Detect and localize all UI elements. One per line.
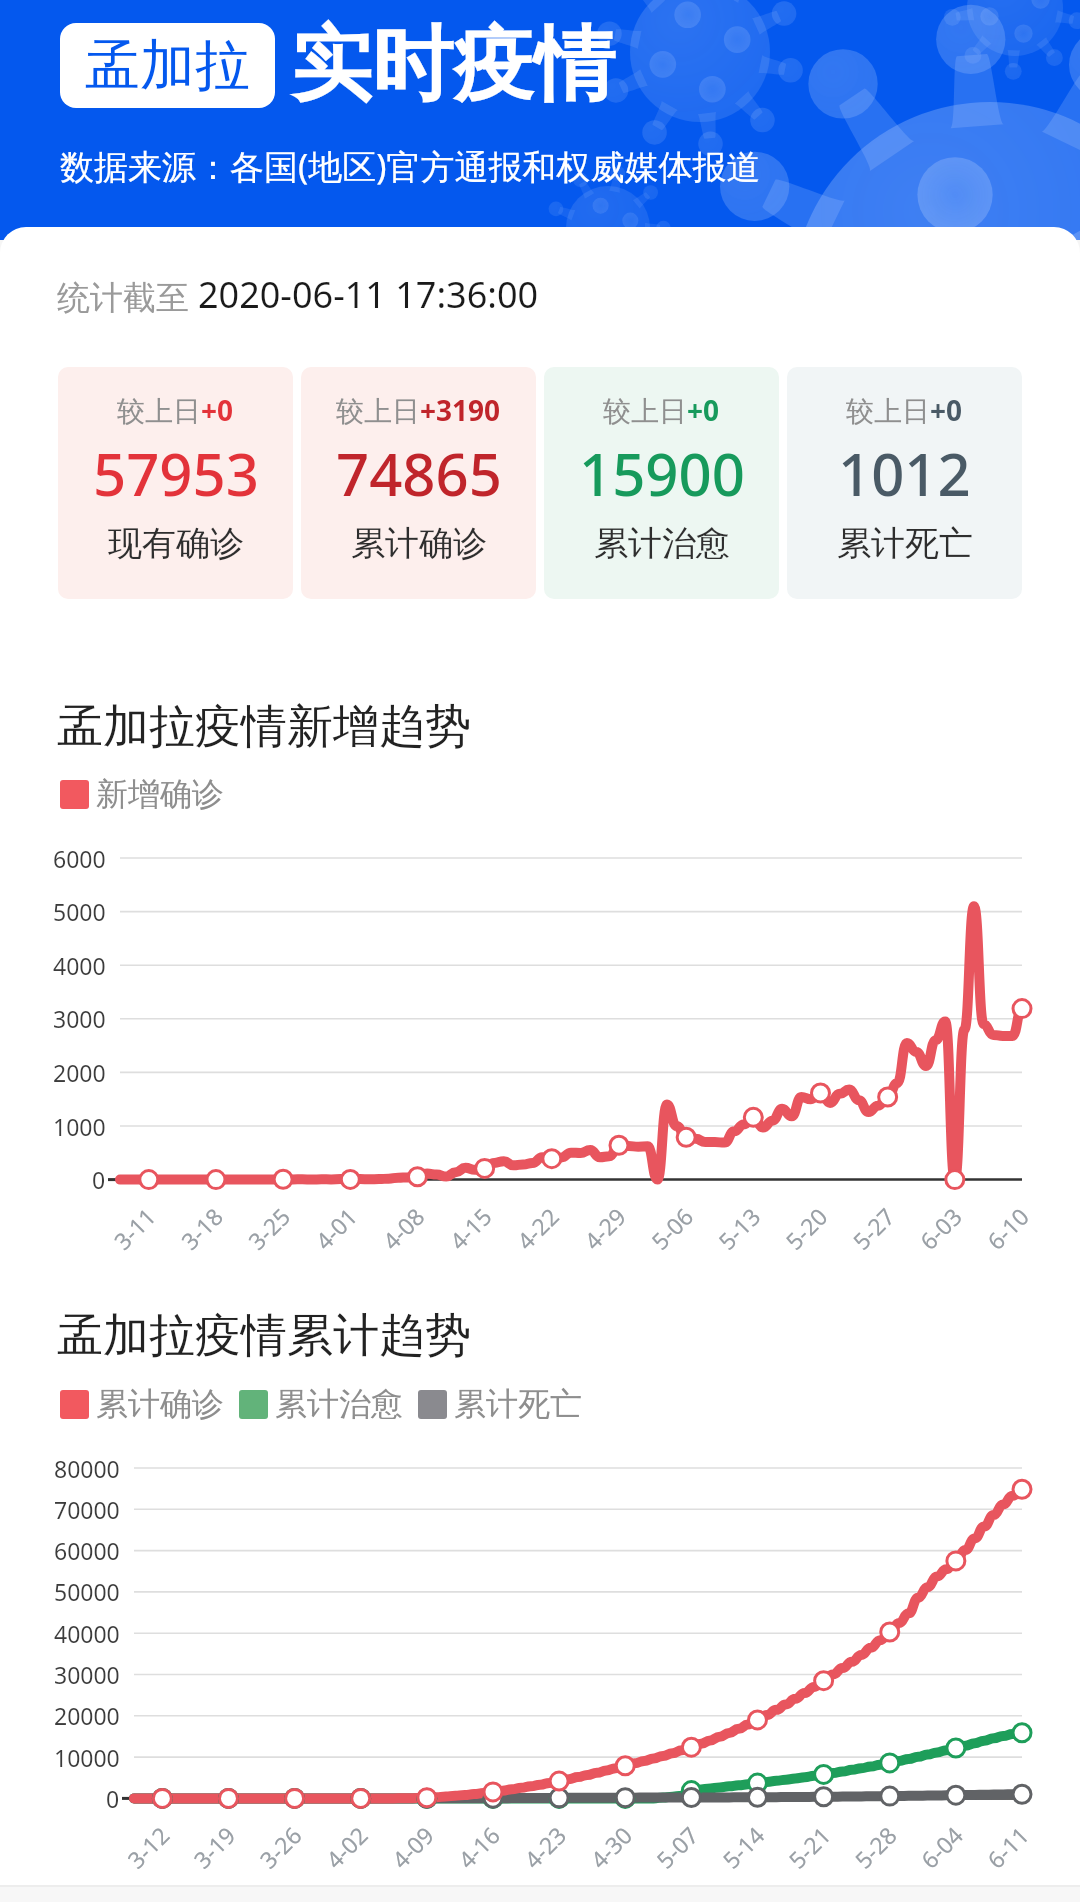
staticText: 累计治愈 bbox=[594, 522, 730, 565]
staticText: 数据来源：各国(地区)官方通报和权威媒体报道 bbox=[60, 143, 761, 189]
staticText: 累计死亡 bbox=[454, 1384, 582, 1424]
staticText: 较上日 bbox=[117, 394, 201, 429]
staticText: 统计截至 bbox=[57, 274, 198, 319]
button[interactable]: 较上日 bbox=[301, 367, 536, 599]
button[interactable]: 较上日 bbox=[544, 367, 779, 599]
staticText: 累计确诊 bbox=[351, 522, 487, 565]
staticText: 新增确诊 bbox=[96, 774, 224, 814]
staticText: 孟加拉疫情累计趋势 bbox=[57, 1307, 471, 1365]
other: 孟加拉疫情新增趋势折线图 bbox=[0, 814, 1080, 1307]
staticText: 孟加拉 bbox=[85, 31, 250, 100]
button[interactable]: 累计死亡 bbox=[418, 1384, 582, 1424]
staticText: 74865 bbox=[336, 434, 502, 513]
staticText: 15900 bbox=[579, 434, 745, 513]
staticText: 累计死亡 bbox=[837, 522, 973, 565]
button[interactable]: 累计确诊 bbox=[60, 1384, 224, 1424]
staticText: 孟加拉疫情新增趋势 bbox=[57, 698, 471, 756]
staticText: 累计确诊 bbox=[96, 1384, 224, 1424]
staticText: +0 bbox=[201, 391, 234, 429]
staticText: +0 bbox=[930, 391, 963, 429]
button[interactable]: 较上日 bbox=[787, 367, 1022, 599]
button[interactable]: 新增确诊 bbox=[60, 774, 224, 814]
staticText: 1012 bbox=[838, 434, 971, 513]
staticText: +0 bbox=[687, 391, 720, 429]
staticText: +3190 bbox=[420, 391, 501, 429]
staticText: 2020-06-11 17:36:00 bbox=[198, 270, 539, 319]
staticText: 较上日 bbox=[603, 394, 687, 429]
staticText: 现有确诊 bbox=[108, 522, 244, 565]
staticText: 累计治愈 bbox=[275, 1384, 403, 1424]
button[interactable]: 孟加拉 bbox=[60, 23, 275, 108]
staticText: 较上日 bbox=[336, 394, 420, 429]
staticText: 实时疫情 bbox=[291, 14, 615, 116]
button[interactable]: 累计治愈 bbox=[239, 1384, 403, 1424]
button[interactable]: 较上日 bbox=[58, 367, 293, 599]
staticText: 57953 bbox=[93, 434, 259, 513]
other: 孟加拉疫情累计趋势折线图 bbox=[0, 1424, 1080, 1885]
staticText: 较上日 bbox=[846, 394, 930, 429]
